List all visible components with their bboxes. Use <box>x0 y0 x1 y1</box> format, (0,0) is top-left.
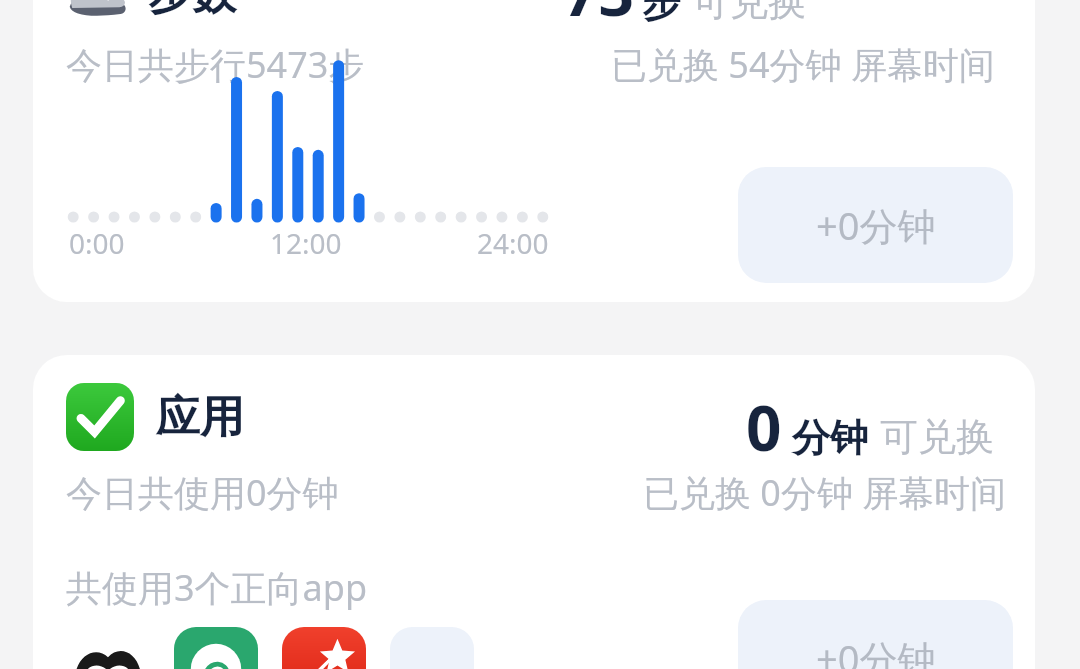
button[interactable]: App <box>66 627 150 669</box>
staticText: 分钟 <box>792 414 868 462</box>
staticText: 0 <box>746 385 782 469</box>
button[interactable]: 已完成 <box>33 355 1035 669</box>
button[interactable]: App <box>174 627 258 669</box>
staticText: 共使用3个正向app <box>66 563 368 612</box>
other: 已完成 <box>66 383 134 451</box>
staticText: 12:00 <box>270 224 342 262</box>
staticText: 应用 <box>156 390 244 445</box>
staticText: 已兑换 0分钟 屏幕时间 <box>643 468 1007 517</box>
staticText: 步数 <box>148 0 236 21</box>
staticText: 已兑换 54分钟 屏幕时间 <box>611 40 995 89</box>
staticText: +0分钟 <box>816 199 936 251</box>
button[interactable]: +0分钟 <box>738 600 1013 669</box>
button[interactable]: App <box>282 627 366 669</box>
staticText: 73 <box>563 0 634 34</box>
staticText: 可兑换 <box>880 413 994 461</box>
staticText: 可兑换 <box>692 0 806 26</box>
button[interactable]: +0分钟 <box>738 167 1013 283</box>
staticText: 0:00 <box>69 224 125 262</box>
button[interactable]: 更多 <box>390 627 474 669</box>
other: 步数 <box>66 0 128 24</box>
staticText: 今日共步行5473步 <box>66 40 365 89</box>
staticText: 24:00 <box>477 224 549 262</box>
button[interactable]: 步数 <box>33 0 1035 302</box>
staticText: 步 <box>642 0 680 27</box>
staticText: 今日共使用0分钟 <box>66 468 339 517</box>
staticText: +0分钟 <box>816 632 936 669</box>
